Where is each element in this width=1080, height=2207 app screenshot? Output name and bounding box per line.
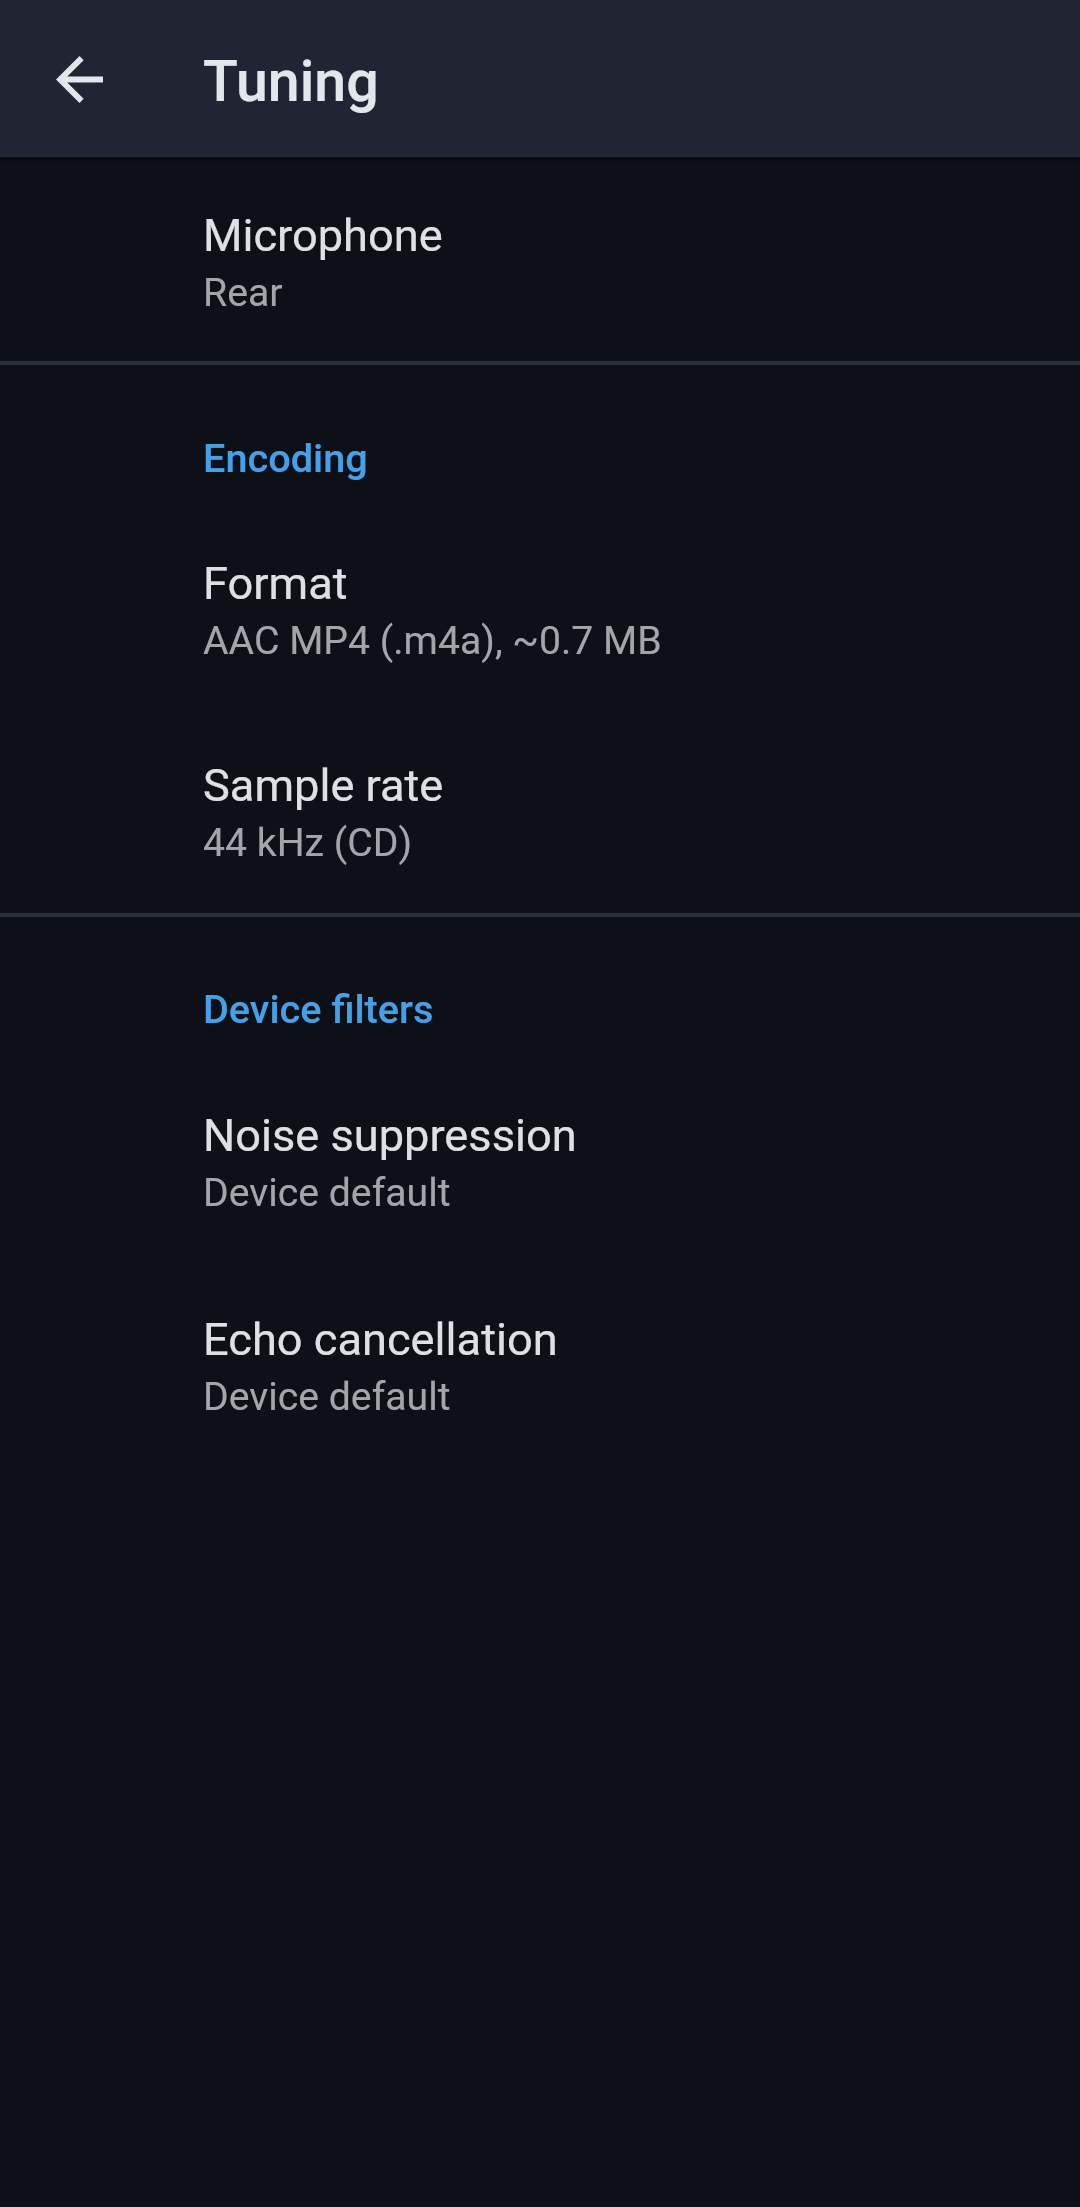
button[interactable]: Sample rate bbox=[0, 724, 1080, 870]
staticText: Sample rate bbox=[203, 759, 444, 812]
staticText: Microphone bbox=[203, 209, 443, 262]
staticText: Rear bbox=[203, 270, 283, 316]
staticText: Format bbox=[203, 557, 348, 610]
staticText: Noise suppression bbox=[203, 1109, 577, 1162]
button[interactable]: Echo cancellation bbox=[0, 1278, 1080, 1424]
staticText: Device filters bbox=[203, 986, 434, 1032]
button[interactable]: Microphone bbox=[0, 174, 1080, 363]
staticText: AAC MP4 (.m4a), ~0.7 MB bbox=[203, 618, 662, 664]
staticText: Echo cancellation bbox=[203, 1313, 558, 1366]
staticText: Device default bbox=[203, 1374, 451, 1420]
button[interactable]: Navigate up bbox=[29, 29, 129, 129]
staticText: Tuning bbox=[203, 48, 379, 115]
staticText: Device default bbox=[203, 1170, 451, 1216]
staticText: 44 kHz (CD) bbox=[203, 820, 413, 866]
button[interactable]: Format bbox=[0, 522, 1080, 668]
button[interactable]: Noise suppression bbox=[0, 1074, 1080, 1220]
staticText: Encoding bbox=[203, 435, 368, 481]
